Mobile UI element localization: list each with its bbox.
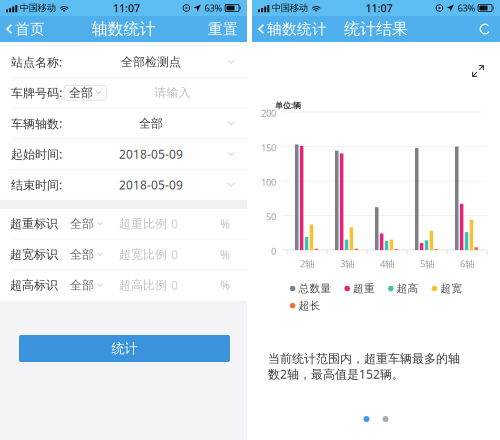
staticText: 超重标识: [10, 216, 58, 231]
staticText: 起始时间:: [11, 146, 62, 162]
staticText: 50: [266, 210, 276, 223]
staticText: 0: [171, 216, 178, 232]
staticText: 站点名称:: [11, 54, 62, 70]
staticText: 0: [171, 246, 178, 262]
button[interactable]: 全部: [70, 215, 103, 233]
staticText: 全部: [69, 85, 93, 100]
staticText: 2018-05-09: [119, 177, 183, 193]
staticText: 车牌号码:: [11, 85, 62, 101]
staticText: 11:07: [113, 1, 140, 15]
button[interactable]: Refresh: [470, 16, 500, 42]
button[interactable]: 起始时间:: [0, 139, 247, 169]
staticText: 11:07: [365, 1, 392, 15]
staticText: 总数量: [298, 282, 331, 295]
staticText: 超重比例: [119, 216, 167, 231]
staticText: 当前统计范围内，超重车辆最多的轴数2轴，最高值是152辆。: [268, 351, 460, 382]
button[interactable]: Fullscreen: [467, 60, 489, 82]
staticText: 统计: [111, 340, 137, 357]
staticText: 超高比例: [119, 278, 167, 292]
staticText: 请输入: [154, 85, 190, 100]
staticText: 统计结果: [344, 19, 408, 39]
staticText: 超宽比例: [119, 247, 167, 262]
staticText: 3轴: [340, 257, 354, 270]
staticText: 全部: [70, 278, 94, 292]
staticText: 4轴: [380, 257, 394, 270]
staticText: 2018-05-09: [119, 146, 183, 162]
button[interactable]: 全部: [64, 85, 106, 100]
staticText: 超高: [397, 282, 419, 295]
button[interactable]: 全部: [70, 276, 103, 294]
staticText: 超宽: [440, 282, 462, 295]
staticText: 5轴: [420, 257, 434, 270]
button[interactable]: 站点名称:: [0, 47, 247, 77]
button[interactable]: 请输入: [122, 82, 222, 104]
staticText: 超宽标识: [10, 247, 58, 262]
staticText: %: [220, 246, 230, 262]
staticText: %: [220, 216, 230, 232]
button[interactable]: 车辆轴数:: [0, 108, 247, 138]
staticText: 轴数统计: [91, 19, 155, 39]
staticText: 中国移动: [20, 2, 56, 14]
staticText: %: [220, 277, 230, 293]
staticText: 结束时间:: [11, 177, 62, 193]
staticText: 63%: [458, 2, 476, 14]
staticText: 全部: [70, 247, 94, 262]
staticText: 2轴: [300, 257, 314, 270]
staticText: 单位:辆: [275, 100, 301, 111]
button[interactable]: 首页: [0, 16, 53, 42]
staticText: 超长: [298, 299, 320, 312]
staticText: 超重: [353, 282, 375, 295]
button[interactable]: 结束时间:: [0, 170, 247, 200]
staticText: 中国移动: [272, 2, 308, 14]
staticText: 0: [171, 277, 178, 293]
staticText: 重置: [208, 20, 238, 38]
button[interactable]: 轴数统计: [252, 16, 335, 42]
staticText: 150: [261, 141, 276, 154]
staticText: 全部: [139, 116, 163, 131]
button[interactable]: 全部: [70, 245, 103, 263]
staticText: 6轴: [460, 257, 474, 270]
staticText: 车辆轴数:: [11, 115, 62, 131]
staticText: 全部检测点: [121, 55, 181, 69]
staticText: 全部: [70, 216, 94, 231]
button[interactable]: 重置: [199, 16, 247, 42]
button[interactable]: 统计: [19, 335, 230, 362]
staticText: 首页: [15, 20, 45, 38]
staticText: 100: [261, 176, 276, 188]
staticText: 63%: [205, 2, 223, 14]
staticText: 超高标识: [10, 278, 58, 292]
staticText: 轴数统计: [267, 20, 327, 38]
staticText: 0: [271, 245, 276, 257]
staticText: 200: [261, 107, 276, 119]
